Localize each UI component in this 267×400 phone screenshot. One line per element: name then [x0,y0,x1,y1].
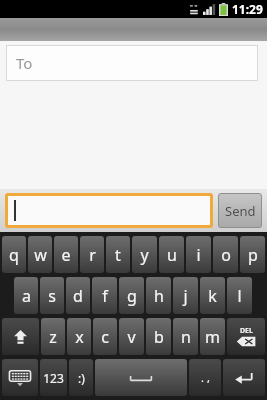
staticText: p [248,244,258,266]
staticText: k [208,285,217,307]
staticText: 11:29 [232,1,263,17]
button[interactable]: To [6,45,258,81]
staticText: d [73,285,83,307]
button[interactable]: d [66,277,90,314]
button[interactable]: 123 [40,359,67,396]
button[interactable]: j [173,277,198,314]
button[interactable]: i [186,236,211,273]
staticText: v [127,326,136,348]
button[interactable]: . , [189,359,221,396]
staticText: To [16,53,33,73]
staticText: s [48,285,56,307]
staticText: :) [78,370,85,386]
button[interactable]: r [80,236,104,273]
staticText: c [101,326,109,348]
staticText: q [9,244,19,266]
staticText: Send [225,202,256,220]
staticText: y [140,244,149,266]
button[interactable]: z [41,318,65,355]
staticText: e [61,244,71,266]
button[interactable]: g [119,277,144,314]
button[interactable]: Enter [223,359,265,396]
button[interactable]: Hide keyboard [2,359,38,396]
button[interactable]: o [213,236,238,273]
button[interactable]: y [132,236,157,273]
staticText: u [167,244,177,266]
staticText: o [221,244,231,266]
button[interactable]: h [146,277,171,314]
button[interactable]: a [14,277,38,314]
button[interactable]: Shift [2,318,39,355]
button[interactable]: f [92,277,117,314]
staticText: g [127,285,137,307]
button[interactable]: m [200,318,225,355]
button[interactable]: t [106,236,130,273]
button[interactable]: :) [69,359,93,396]
button[interactable]: v [119,318,144,355]
staticText: x [75,326,84,348]
button[interactable]: w [28,236,52,273]
button[interactable]: Space [95,359,187,396]
staticText: b [154,326,164,348]
button[interactable]: b [146,318,171,355]
button[interactable]: c [93,318,117,355]
staticText: w [34,244,47,266]
staticText: m [205,326,220,348]
button[interactable]: q [2,236,26,273]
staticText: i [196,244,201,266]
staticText: h [154,285,164,307]
button[interactable]: Send [218,193,262,228]
staticText: a [22,285,31,307]
button[interactable]: p [240,236,265,273]
staticText: r [89,244,96,266]
staticText: f [102,285,108,307]
staticText: t [115,244,121,266]
staticText: j [183,285,188,307]
button[interactable]: e [54,236,78,273]
button[interactable]: k [200,277,225,314]
staticText: l [237,285,242,307]
staticText: 123 [43,370,64,386]
button[interactable]: x [67,318,91,355]
button[interactable] [8,196,210,225]
button[interactable]: l [227,277,252,314]
button[interactable]: u [159,236,184,273]
button[interactable]: s [40,277,64,314]
staticText: DEL [240,326,253,336]
button[interactable]: Delete [227,318,265,355]
button[interactable]: n [173,318,198,355]
staticText: z [49,326,57,348]
staticText: . , [201,370,210,385]
staticText: n [181,326,191,348]
